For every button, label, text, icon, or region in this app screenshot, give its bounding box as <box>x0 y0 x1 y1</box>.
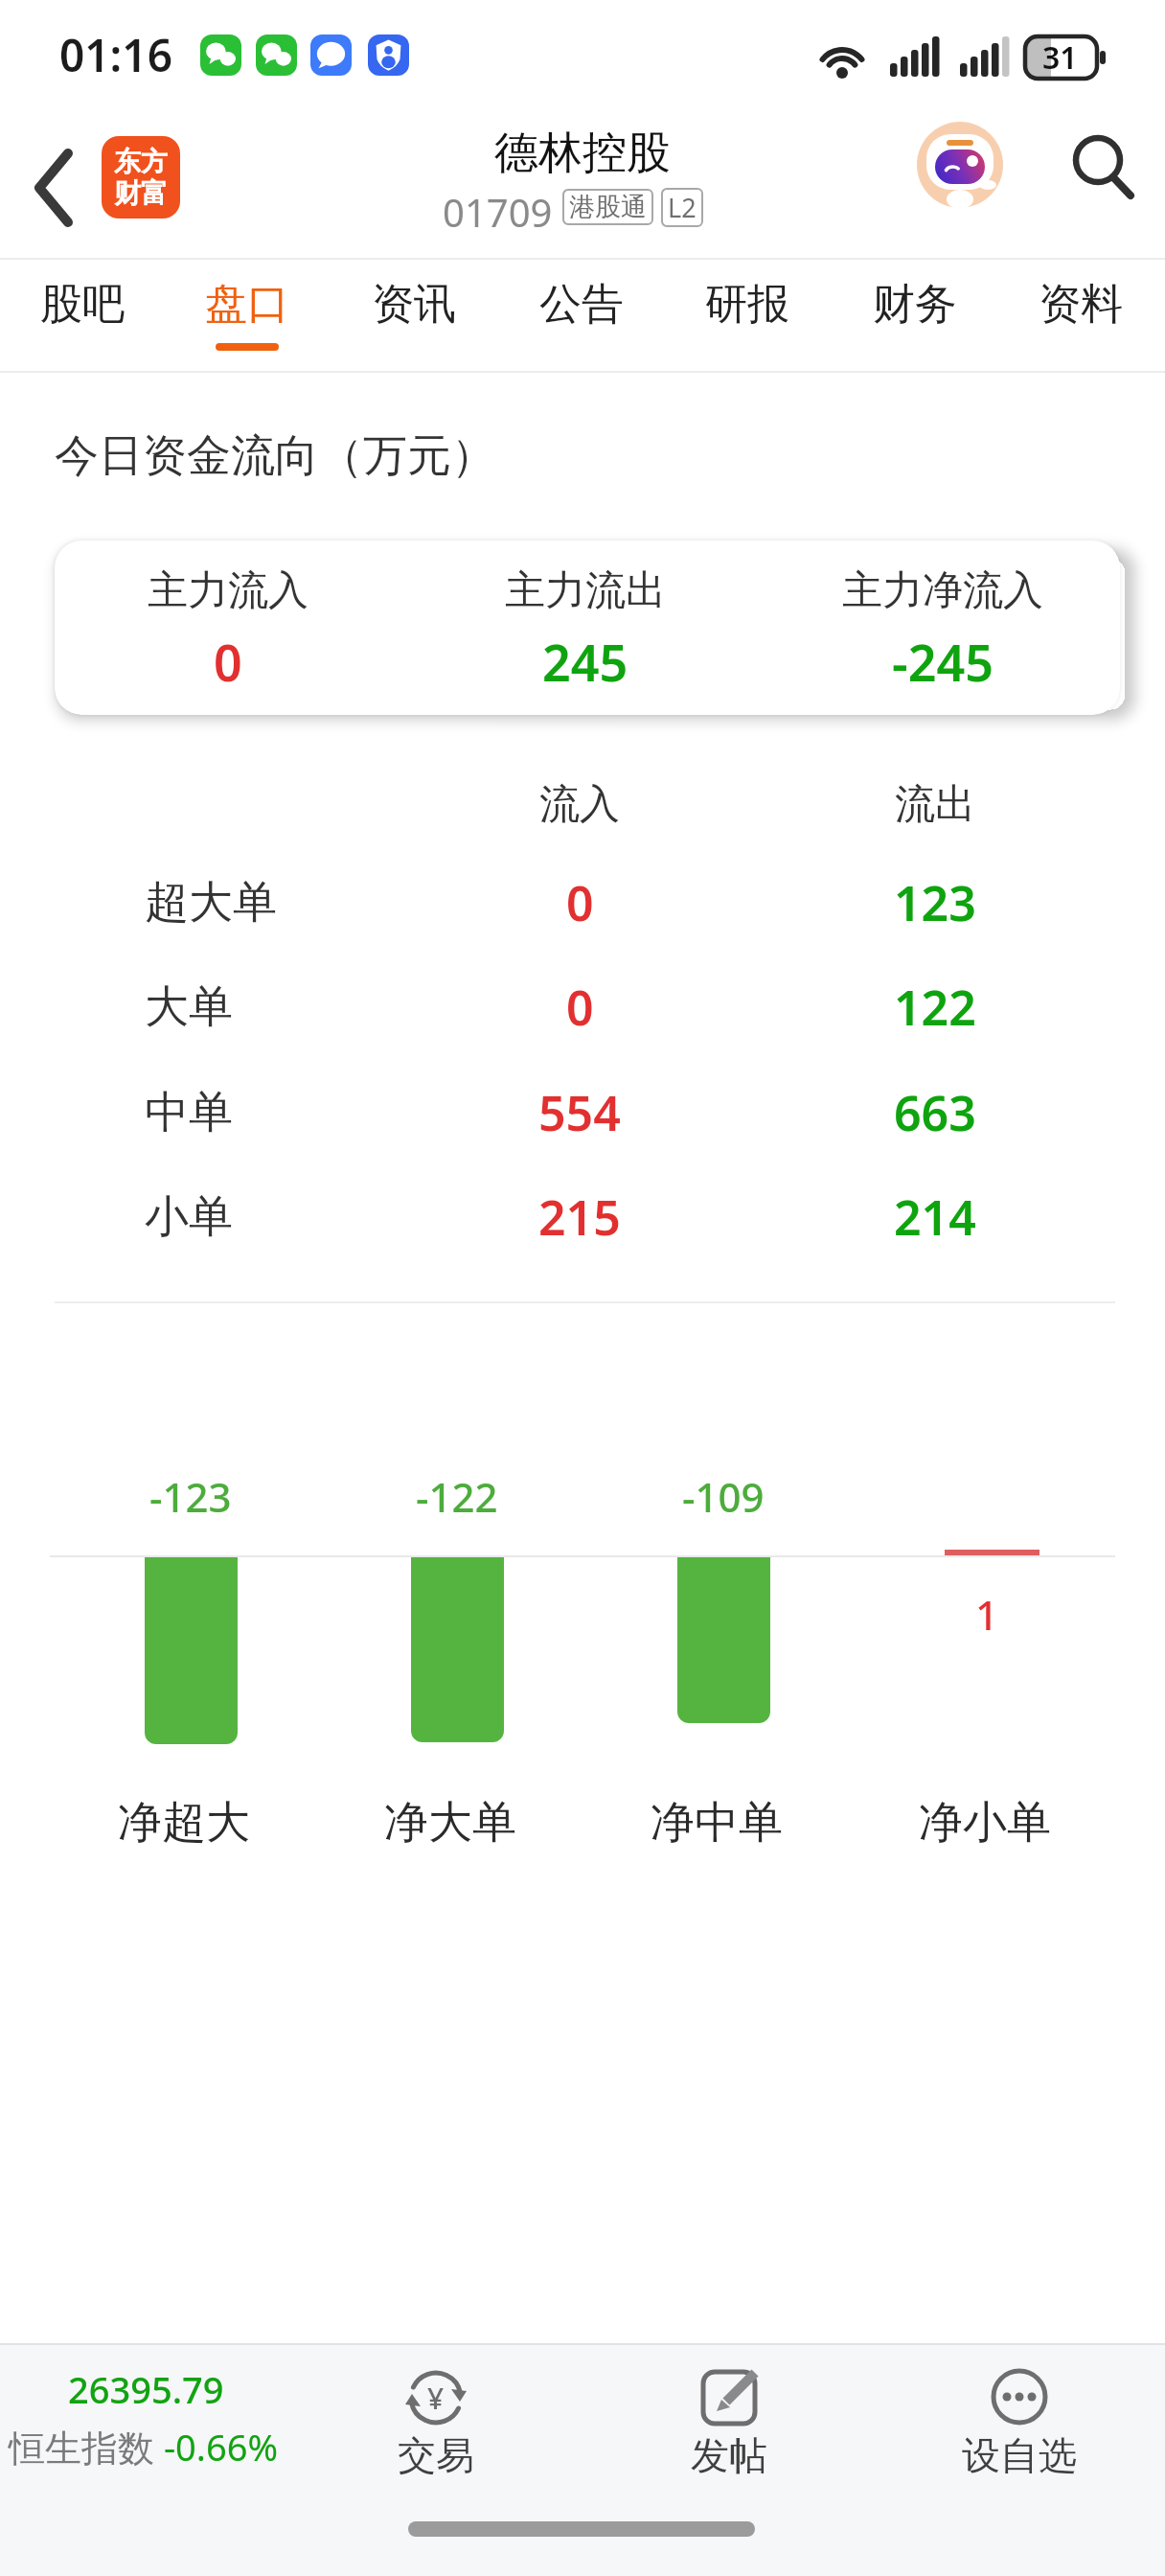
staticText: 流入 <box>539 779 620 830</box>
staticText: 663 <box>894 1080 976 1145</box>
button[interactable]: 设自选 <box>924 2417 1115 2494</box>
staticText: 0 <box>566 975 594 1040</box>
button[interactable]: 资讯 <box>337 262 491 346</box>
staticText: 1 <box>975 1587 999 1642</box>
staticText: 123 <box>894 870 976 935</box>
staticText: -123 <box>149 1469 232 1524</box>
staticText: 大单 <box>145 979 233 1035</box>
staticText: 主力流入 <box>148 565 308 616</box>
staticText: 净超大 <box>118 1795 250 1851</box>
staticText: 0 <box>566 870 594 935</box>
staticText: 流出 <box>895 779 975 830</box>
staticText: 215 <box>538 1184 621 1250</box>
staticText: 研报 <box>705 278 789 331</box>
staticText: 小单 <box>145 1189 233 1245</box>
staticText: -245 <box>892 628 994 696</box>
button[interactable]: 股吧 <box>6 262 159 346</box>
staticText: 净中单 <box>651 1795 783 1851</box>
button[interactable]: 财务 <box>838 262 992 346</box>
staticText: 26395.79 <box>68 2364 224 2414</box>
staticText: ¥ <box>427 2379 445 2418</box>
button[interactable] <box>0 2349 287 2502</box>
staticText: 01709 <box>443 186 553 228</box>
staticText: 中单 <box>145 1085 233 1140</box>
staticText: 恒生指数 -0.66% <box>9 2422 279 2472</box>
staticText: -109 <box>682 1469 765 1524</box>
staticText: 股吧 <box>40 278 125 331</box>
button[interactable] <box>917 122 1003 208</box>
staticText: 公告 <box>539 278 624 331</box>
button[interactable]: 东方 财富 <box>102 136 180 218</box>
staticText: 122 <box>894 975 976 1040</box>
button[interactable] <box>672 2349 787 2502</box>
staticText: 港股通 <box>569 191 647 223</box>
button[interactable] <box>943 2349 1096 2502</box>
button[interactable]: 发帖 <box>652 2417 806 2494</box>
staticText: 01:16 <box>59 25 172 85</box>
staticText: 设自选 <box>962 2431 1077 2479</box>
staticText: L2 <box>668 190 697 225</box>
staticText: 0 <box>214 628 242 696</box>
staticText: 交易 <box>398 2431 474 2479</box>
button[interactable] <box>378 2349 493 2502</box>
button[interactable]: 公告 <box>505 262 658 346</box>
staticText: 245 <box>542 628 628 696</box>
staticText: 净小单 <box>919 1795 1051 1851</box>
staticText: 超大单 <box>145 875 277 931</box>
staticText: 净大单 <box>384 1795 516 1851</box>
staticText: 今日资金流向（万元） <box>55 428 495 484</box>
button[interactable]: 交易 <box>359 2417 513 2494</box>
button[interactable]: 研报 <box>671 262 824 346</box>
staticText: 214 <box>894 1184 976 1250</box>
staticText: -122 <box>416 1469 498 1524</box>
staticText: 554 <box>538 1080 621 1145</box>
staticText: 资讯 <box>372 278 456 331</box>
staticText: 主力净流入 <box>842 565 1043 616</box>
staticText: 31 <box>1042 36 1078 79</box>
button[interactable] <box>38 139 115 219</box>
staticText: 主力流出 <box>505 565 666 616</box>
staticText: 资料 <box>1039 278 1123 331</box>
button[interactable] <box>1063 126 1140 203</box>
staticText: 财务 <box>873 278 957 331</box>
staticText: 盘口 <box>205 278 289 331</box>
button[interactable]: 盘口 <box>171 262 324 346</box>
button[interactable]: 资料 <box>1004 262 1157 346</box>
staticText: 发帖 <box>691 2431 767 2479</box>
staticText: 东方 财富 <box>114 145 168 210</box>
staticText: 德林控股 <box>494 126 671 181</box>
